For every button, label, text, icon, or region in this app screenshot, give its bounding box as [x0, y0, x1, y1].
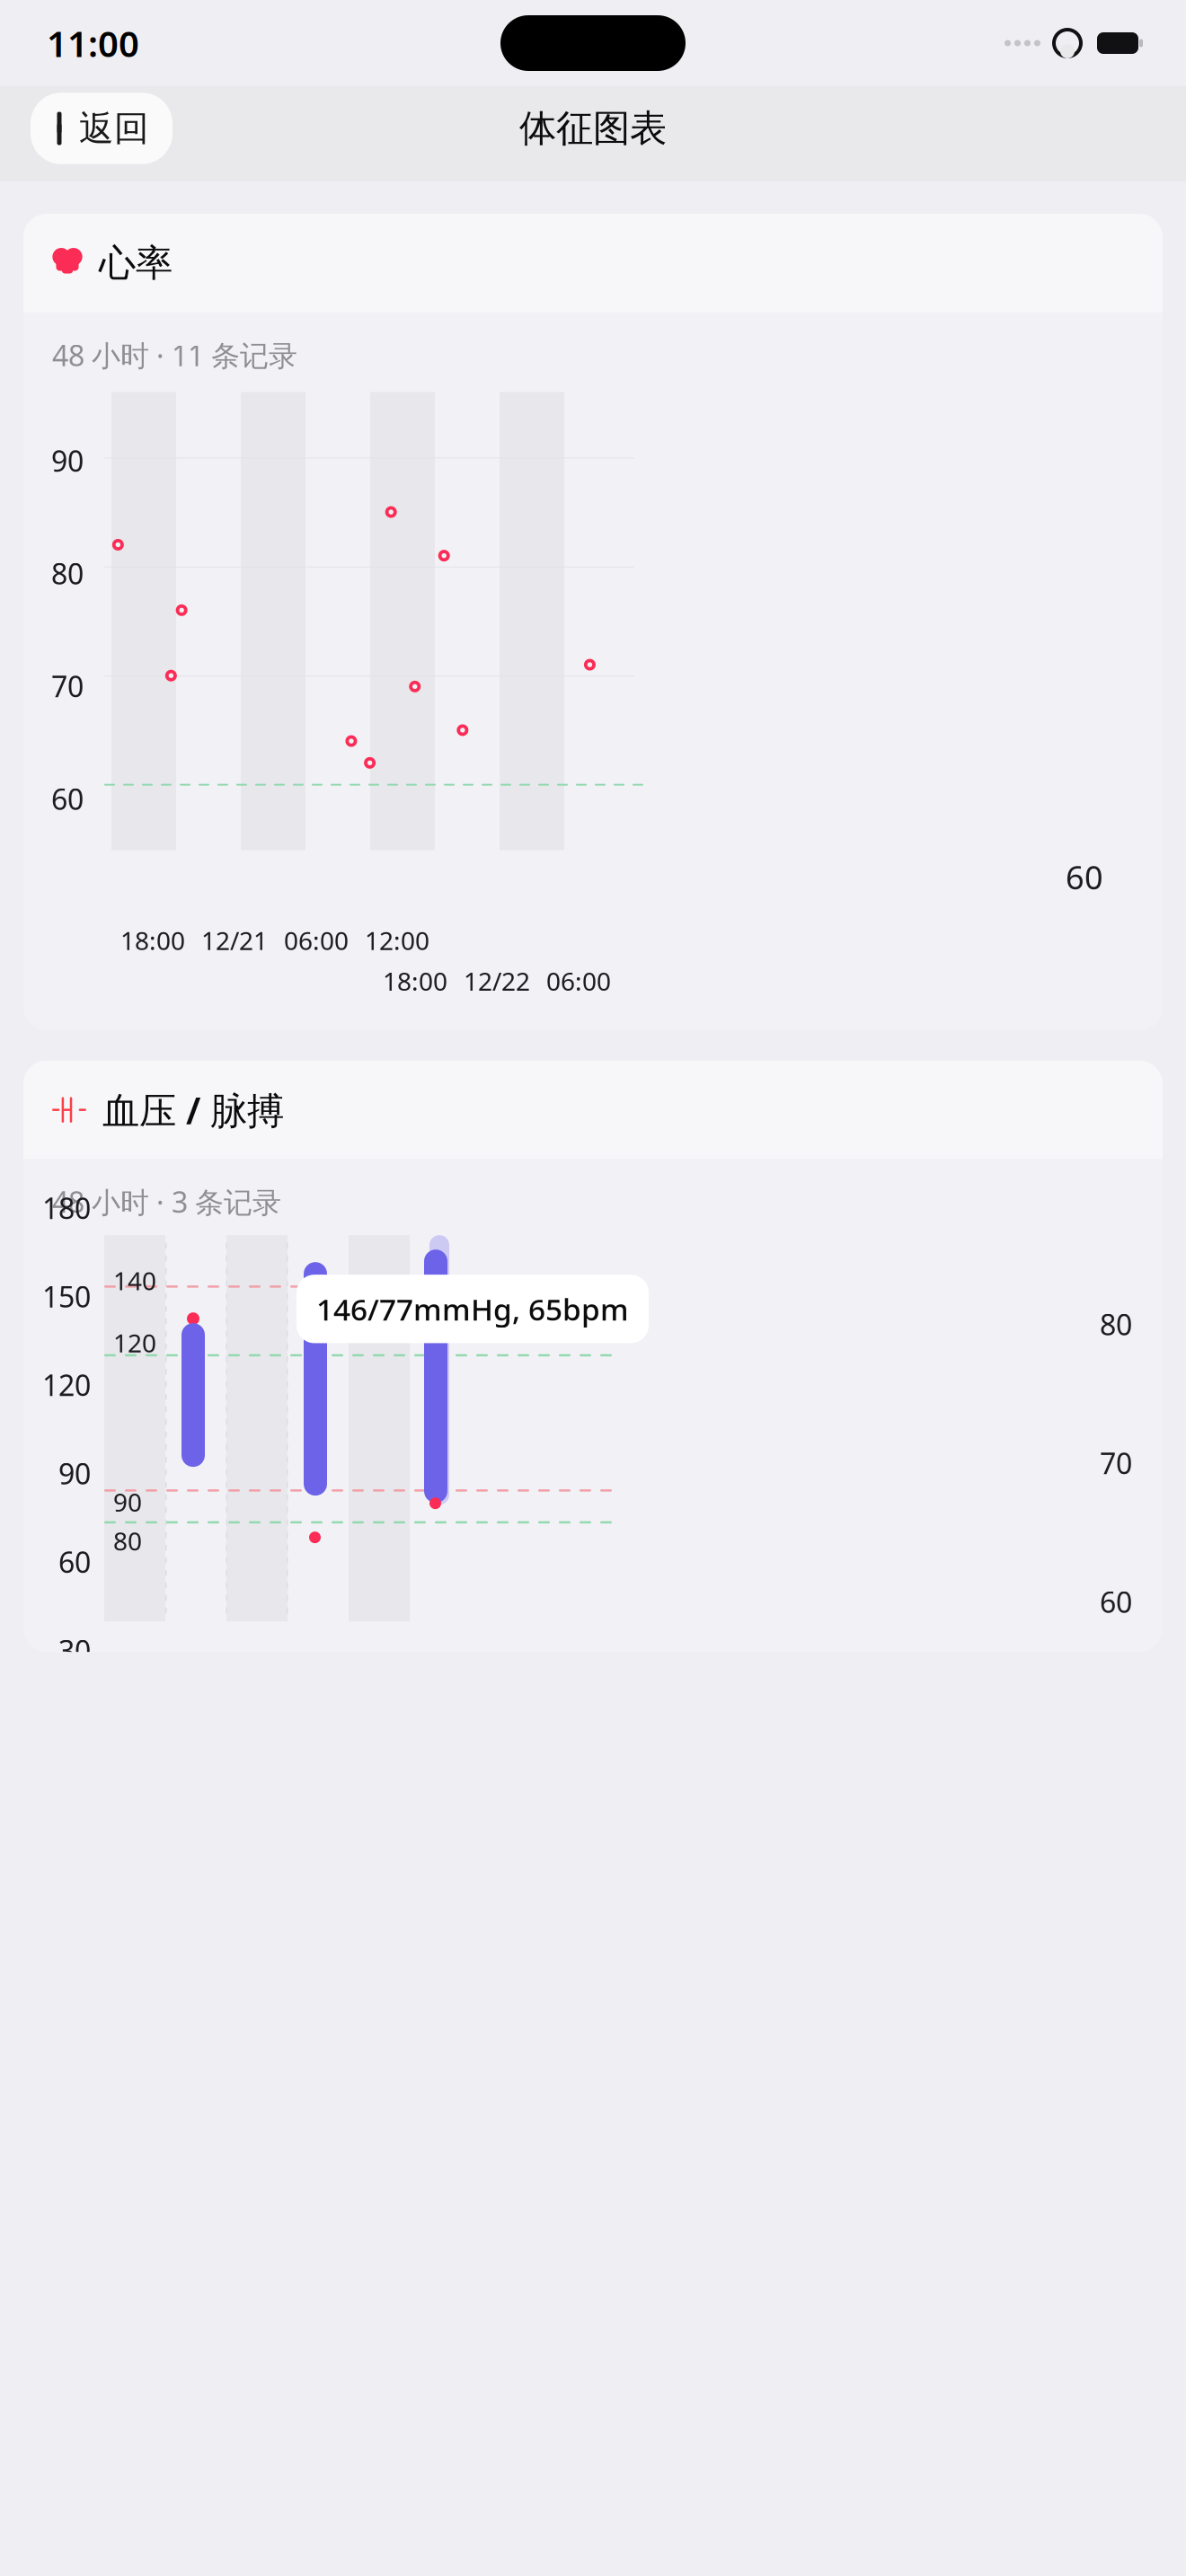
staticText: 150	[42, 1277, 91, 1316]
staticText: 70	[1100, 1444, 1132, 1482]
staticText: 120	[113, 1326, 156, 1359]
staticText: 48 小时 · 11 条记录	[52, 336, 297, 374]
staticText: 140	[113, 1264, 156, 1297]
button[interactable]: 146/77mmHg, 65bpm	[296, 1275, 649, 1343]
staticText: 70	[51, 667, 84, 705]
staticText: 60	[1066, 856, 1103, 898]
staticText: 60	[1100, 1583, 1132, 1621]
staticText: 146/77mmHg, 65bpm	[316, 1289, 629, 1329]
staticText: 80	[1100, 1305, 1132, 1343]
staticText: 返回	[79, 107, 149, 150]
staticText: 120	[42, 1366, 91, 1404]
staticText: 48 小时 · 3 条记录	[52, 1183, 281, 1221]
staticText: 12:00	[365, 924, 429, 957]
staticText: 90	[113, 1485, 142, 1519]
staticText: 12/21	[201, 924, 268, 957]
staticText: 18:00	[120, 924, 185, 957]
staticText: 60	[58, 1543, 91, 1581]
staticText: 80	[113, 1524, 142, 1557]
staticText: 180	[42, 1189, 91, 1227]
button[interactable]: 返回	[31, 93, 173, 164]
staticText: 90	[51, 441, 84, 480]
staticText: 血压 / 脉搏	[102, 1085, 284, 1134]
staticText: 18:00	[383, 964, 447, 998]
staticText: 11:00	[47, 19, 139, 67]
staticText: 心率	[99, 240, 173, 286]
staticText: 80	[51, 554, 84, 592]
staticText: 06:00	[546, 964, 611, 998]
staticText: 90	[58, 1454, 91, 1493]
staticText: 06:00	[284, 924, 349, 957]
staticText: 体征图表	[519, 106, 667, 151]
staticText: 30	[58, 1631, 91, 1669]
staticText: 12/22	[464, 964, 530, 998]
staticText: 60	[51, 780, 84, 818]
